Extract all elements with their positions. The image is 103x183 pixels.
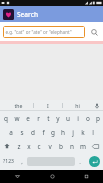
staticText: i	[77, 114, 79, 123]
staticText: k	[81, 128, 85, 137]
staticText: m	[80, 142, 86, 151]
staticText: e.g. "cat" or "ate" or "elephant"	[5, 29, 72, 35]
button[interactable]: h	[58, 125, 68, 139]
button[interactable]: u	[63, 111, 73, 125]
staticText: I	[47, 102, 49, 109]
staticText: x	[27, 142, 31, 151]
staticText: e	[26, 114, 30, 123]
button[interactable]: e.g. "cat" or "ate" or "elephant"	[3, 26, 85, 38]
button[interactable]: x	[24, 139, 34, 153]
button[interactable]: k	[78, 125, 88, 139]
button[interactable]: j	[68, 125, 78, 139]
staticText: p	[96, 114, 100, 123]
button[interactable]: the	[4, 100, 33, 111]
staticText: o	[86, 114, 90, 123]
staticText: d	[31, 128, 35, 137]
button[interactable]: a	[5, 125, 16, 139]
button[interactable]: Recents	[69, 170, 103, 183]
button[interactable]: e	[22, 111, 33, 125]
staticText: t	[47, 114, 50, 123]
staticText: v	[48, 142, 52, 151]
staticText: g	[51, 128, 55, 137]
staticText: f	[42, 128, 45, 137]
button[interactable]: d	[27, 125, 38, 139]
button[interactable]: Search	[88, 26, 100, 38]
button[interactable]: Back	[0, 170, 35, 183]
button[interactable]: Voice input	[91, 100, 103, 111]
staticText: a	[9, 128, 13, 137]
staticText: c	[37, 142, 41, 151]
button[interactable]: t	[43, 111, 53, 125]
staticText: the	[14, 102, 23, 109]
button[interactable]: c	[34, 139, 44, 153]
staticText: b	[59, 142, 63, 151]
button[interactable]: z	[14, 139, 24, 153]
button[interactable]: n	[66, 139, 77, 153]
staticText: Search	[17, 10, 38, 19]
button[interactable]: p	[93, 111, 103, 125]
button[interactable]: ?123	[0, 153, 17, 170]
staticText: n	[70, 142, 74, 151]
button[interactable]: Enter	[89, 156, 100, 167]
staticText: r	[37, 114, 40, 123]
staticText: u	[66, 114, 70, 123]
button[interactable]: ,	[17, 153, 27, 170]
button[interactable]: .	[75, 153, 85, 170]
button[interactable]: q	[0, 111, 11, 125]
button[interactable]: o	[83, 111, 93, 125]
button[interactable]: f	[38, 125, 48, 139]
staticText: z	[17, 142, 21, 151]
staticText: q	[4, 114, 8, 123]
button[interactable]: i	[73, 111, 83, 125]
staticText: ?123	[3, 158, 14, 165]
staticText: h	[61, 128, 65, 137]
button[interactable]: l	[88, 125, 98, 139]
staticText: s	[20, 128, 24, 137]
button[interactable]: w	[11, 111, 22, 125]
staticText: hi	[75, 102, 80, 109]
staticText: y	[56, 114, 60, 123]
staticText: l	[92, 128, 94, 137]
button[interactable]: App icon	[3, 9, 14, 20]
button[interactable]: Shift	[0, 139, 14, 153]
button[interactable]: Backspace	[88, 139, 103, 153]
button[interactable]: v	[44, 139, 55, 153]
button[interactable]: I	[34, 100, 62, 111]
button[interactable]: m	[77, 139, 88, 153]
staticText: ,	[21, 158, 23, 166]
button[interactable]: r	[33, 111, 43, 125]
staticText: j	[72, 128, 74, 137]
staticText: w	[14, 114, 20, 123]
button[interactable]: hi	[63, 100, 91, 111]
button[interactable]: y	[53, 111, 63, 125]
button[interactable]: b	[55, 139, 66, 153]
button[interactable]: Home	[35, 170, 69, 183]
button[interactable]: g	[48, 125, 58, 139]
button[interactable]: s	[16, 125, 27, 139]
staticText: .	[79, 158, 81, 166]
